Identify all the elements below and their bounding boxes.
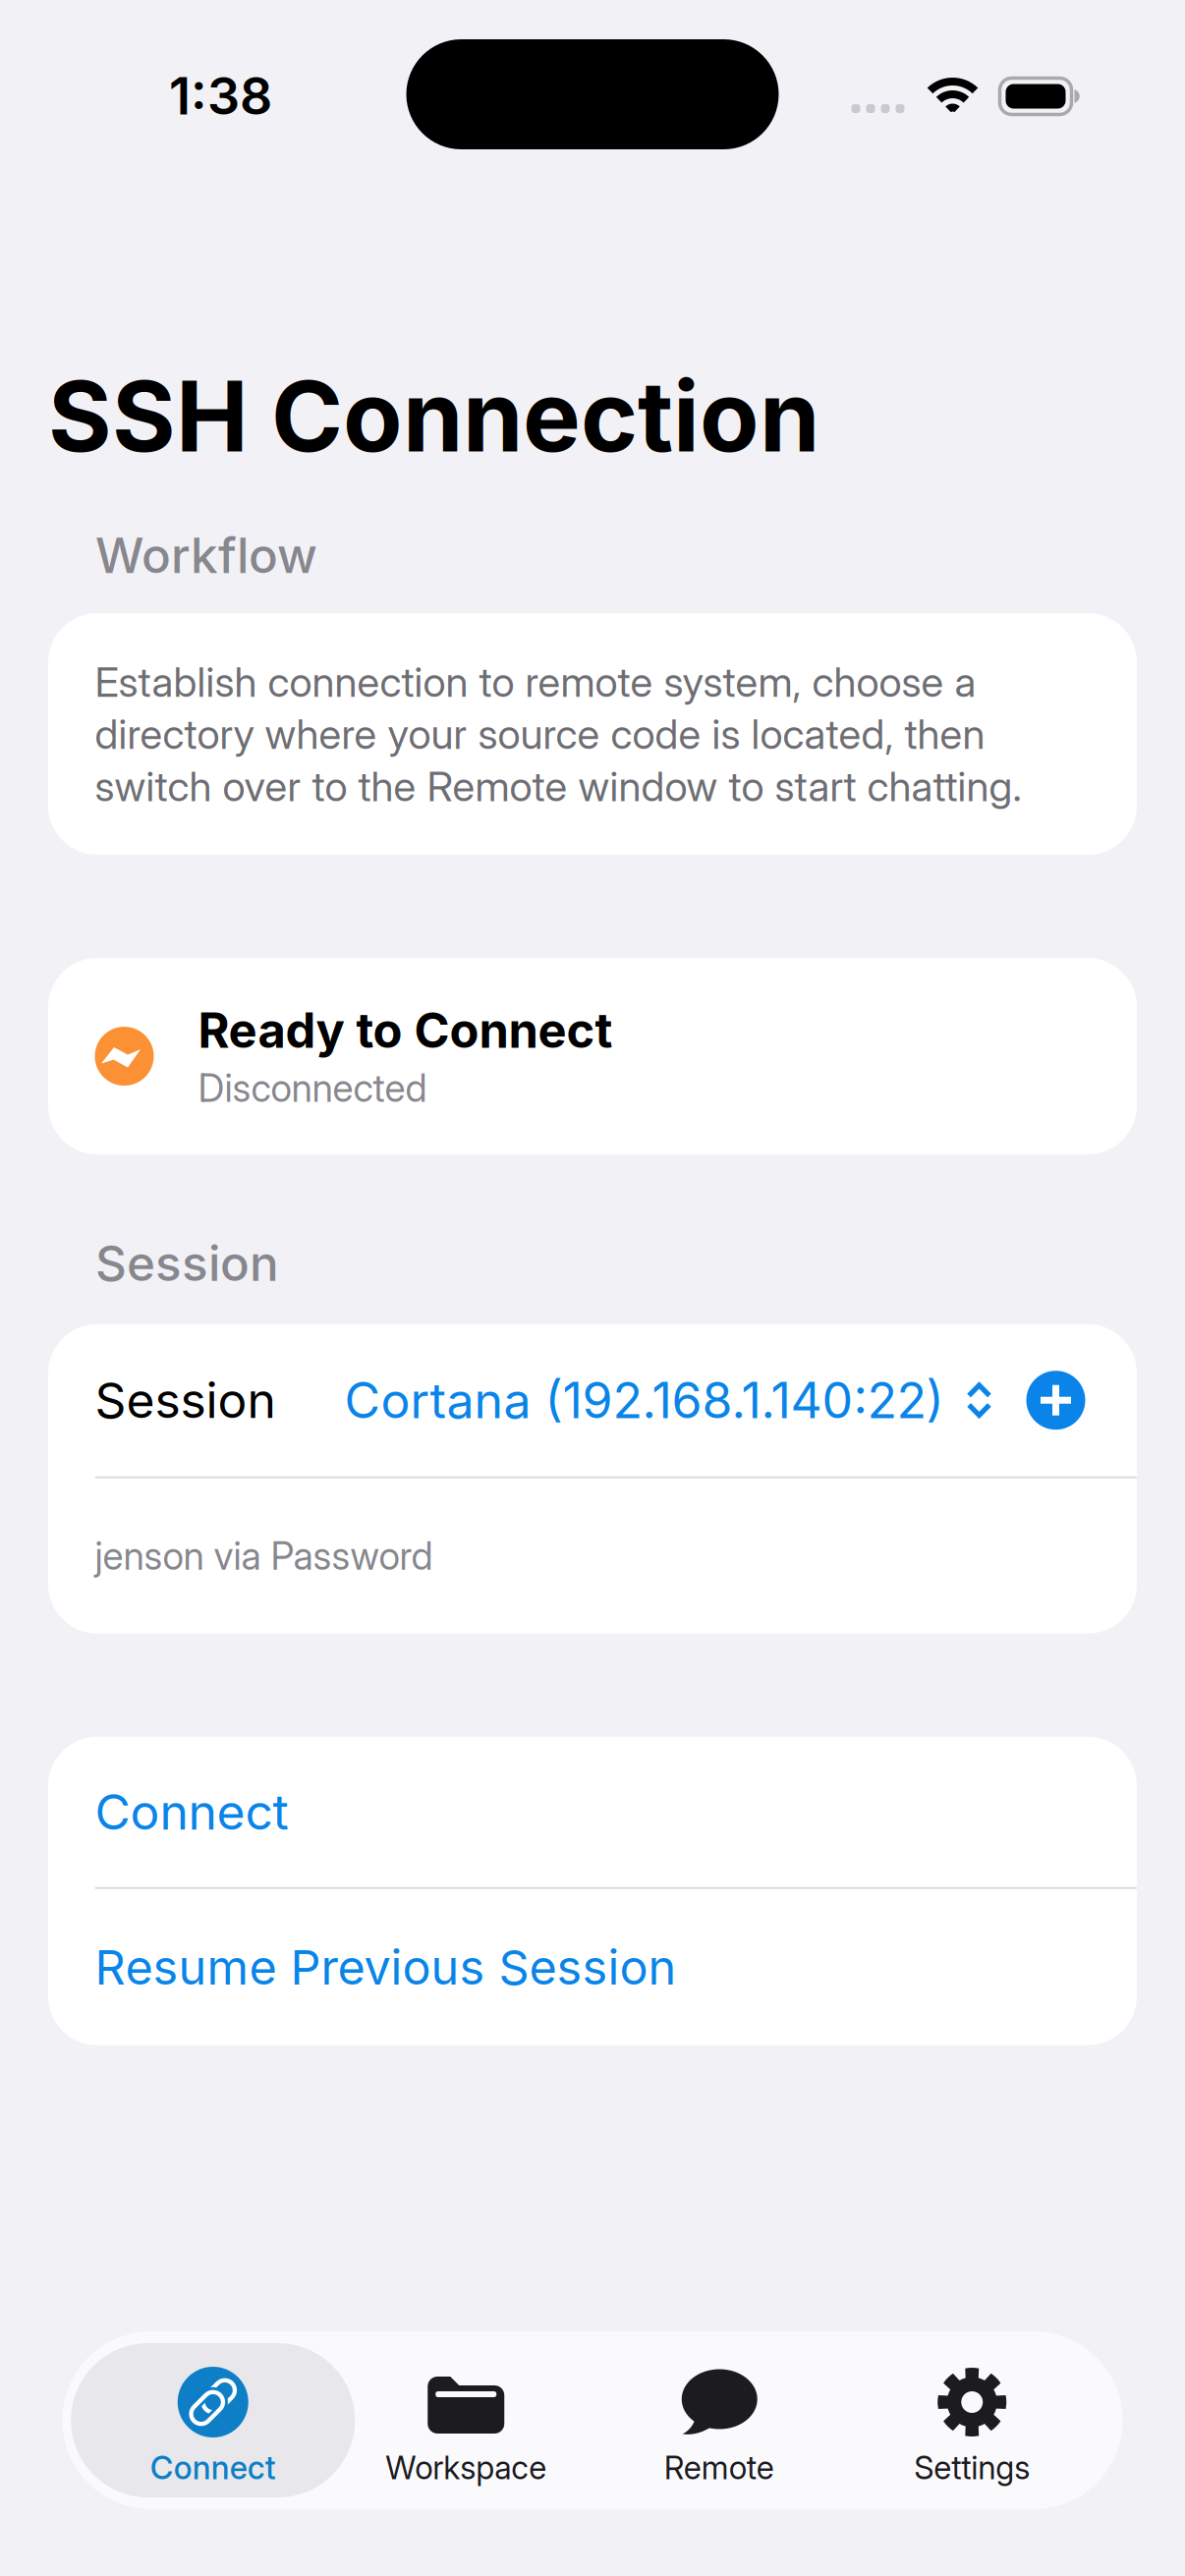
staticText: Remote	[664, 2448, 774, 2487]
staticText: Establish connection to remote system, c…	[95, 657, 1021, 811]
staticText: Session	[95, 1371, 276, 1430]
button[interactable]: Session	[48, 1324, 1137, 1476]
button[interactable]: Remote	[592, 2331, 846, 2509]
staticText: Session	[95, 1234, 279, 1293]
button[interactable]: Connect	[48, 1737, 1137, 1887]
button[interactable]: Connect	[86, 2331, 339, 2509]
staticText: Connect	[95, 1782, 288, 1841]
staticText: Resume Previous Session	[95, 1938, 677, 1996]
staticText: jenson via Password	[95, 1533, 433, 1579]
staticText: Settings	[914, 2448, 1030, 2487]
staticText: Workspace	[385, 2448, 547, 2487]
button[interactable]: Settings	[846, 2331, 1099, 2509]
staticText: Workflow	[95, 526, 317, 585]
staticText: Disconnected	[198, 1065, 427, 1111]
button[interactable]: Workspace	[339, 2331, 592, 2509]
staticText: 1:38	[169, 65, 272, 127]
staticText: Ready to Connect	[198, 1001, 613, 1059]
button[interactable]: Resume Previous Session	[48, 1889, 1137, 2045]
staticText: Cortana (192.168.1.140:22)	[344, 1371, 944, 1430]
staticText: SSH Connection	[48, 358, 819, 475]
staticText: Connect	[150, 2448, 276, 2487]
